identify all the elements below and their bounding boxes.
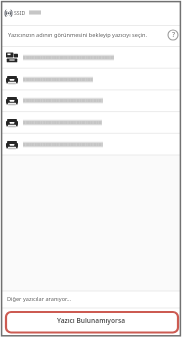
button[interactable]: [2, 112, 180, 133]
button[interactable]: [2, 47, 180, 68]
staticText: Yazıcınızın adının görünmesini bekleyip …: [8, 31, 147, 39]
staticText: SSID: [14, 9, 26, 16]
button[interactable]: Yazıcı Bulunamıyorsa: [2, 308, 180, 334]
button[interactable]: [2, 69, 180, 90]
button[interactable]: [2, 134, 180, 155]
staticText: ?: [172, 30, 176, 40]
staticText: Yazıcı Bulunamıyorsa: [57, 316, 125, 325]
staticText: Diğer yazıcılar aranıyor...: [7, 295, 71, 303]
button[interactable]: Yardım: [167, 29, 180, 42]
button[interactable]: [2, 90, 180, 111]
